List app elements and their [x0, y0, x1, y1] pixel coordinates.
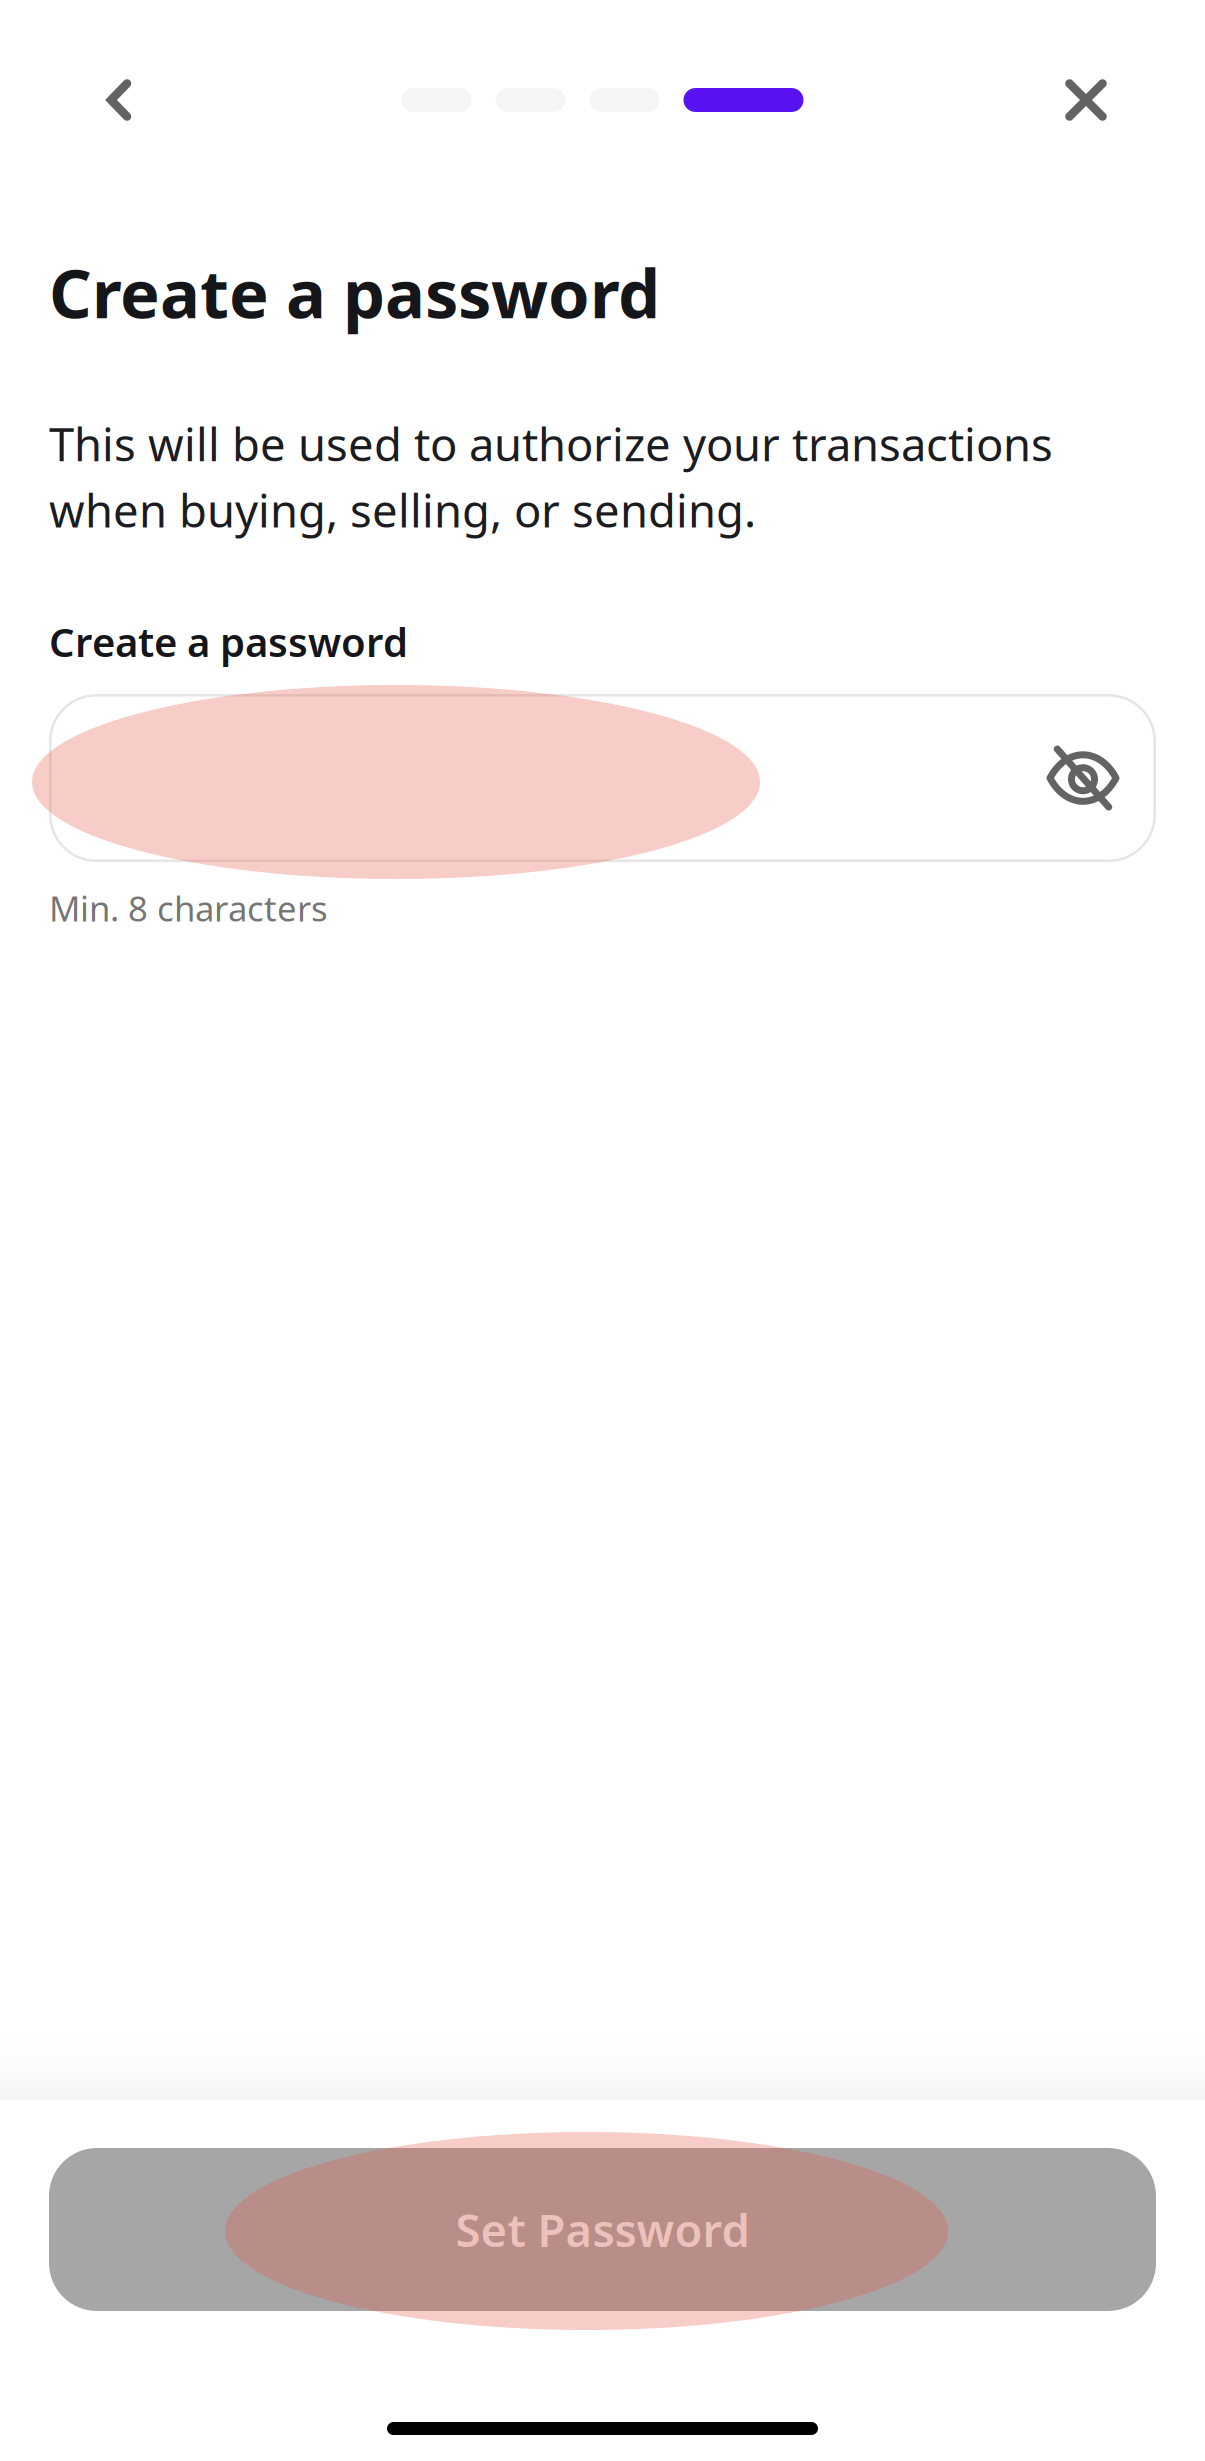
button[interactable]: Show password [1010, 696, 1156, 860]
staticText: Create a password [49, 248, 660, 336]
button[interactable]: Close [1038, 52, 1134, 148]
staticText: This will be used to authorize your tran… [49, 413, 1053, 474]
button[interactable]: Create a password [49, 694, 1156, 862]
button[interactable]: Set Password [49, 2148, 1156, 2311]
button[interactable]: Back [71, 52, 167, 148]
staticText: Set Password [455, 2199, 749, 2260]
staticText: Min. 8 characters [49, 885, 328, 931]
staticText: Create a password [49, 615, 408, 668]
staticText: when buying, selling, or sending. [49, 480, 756, 540]
